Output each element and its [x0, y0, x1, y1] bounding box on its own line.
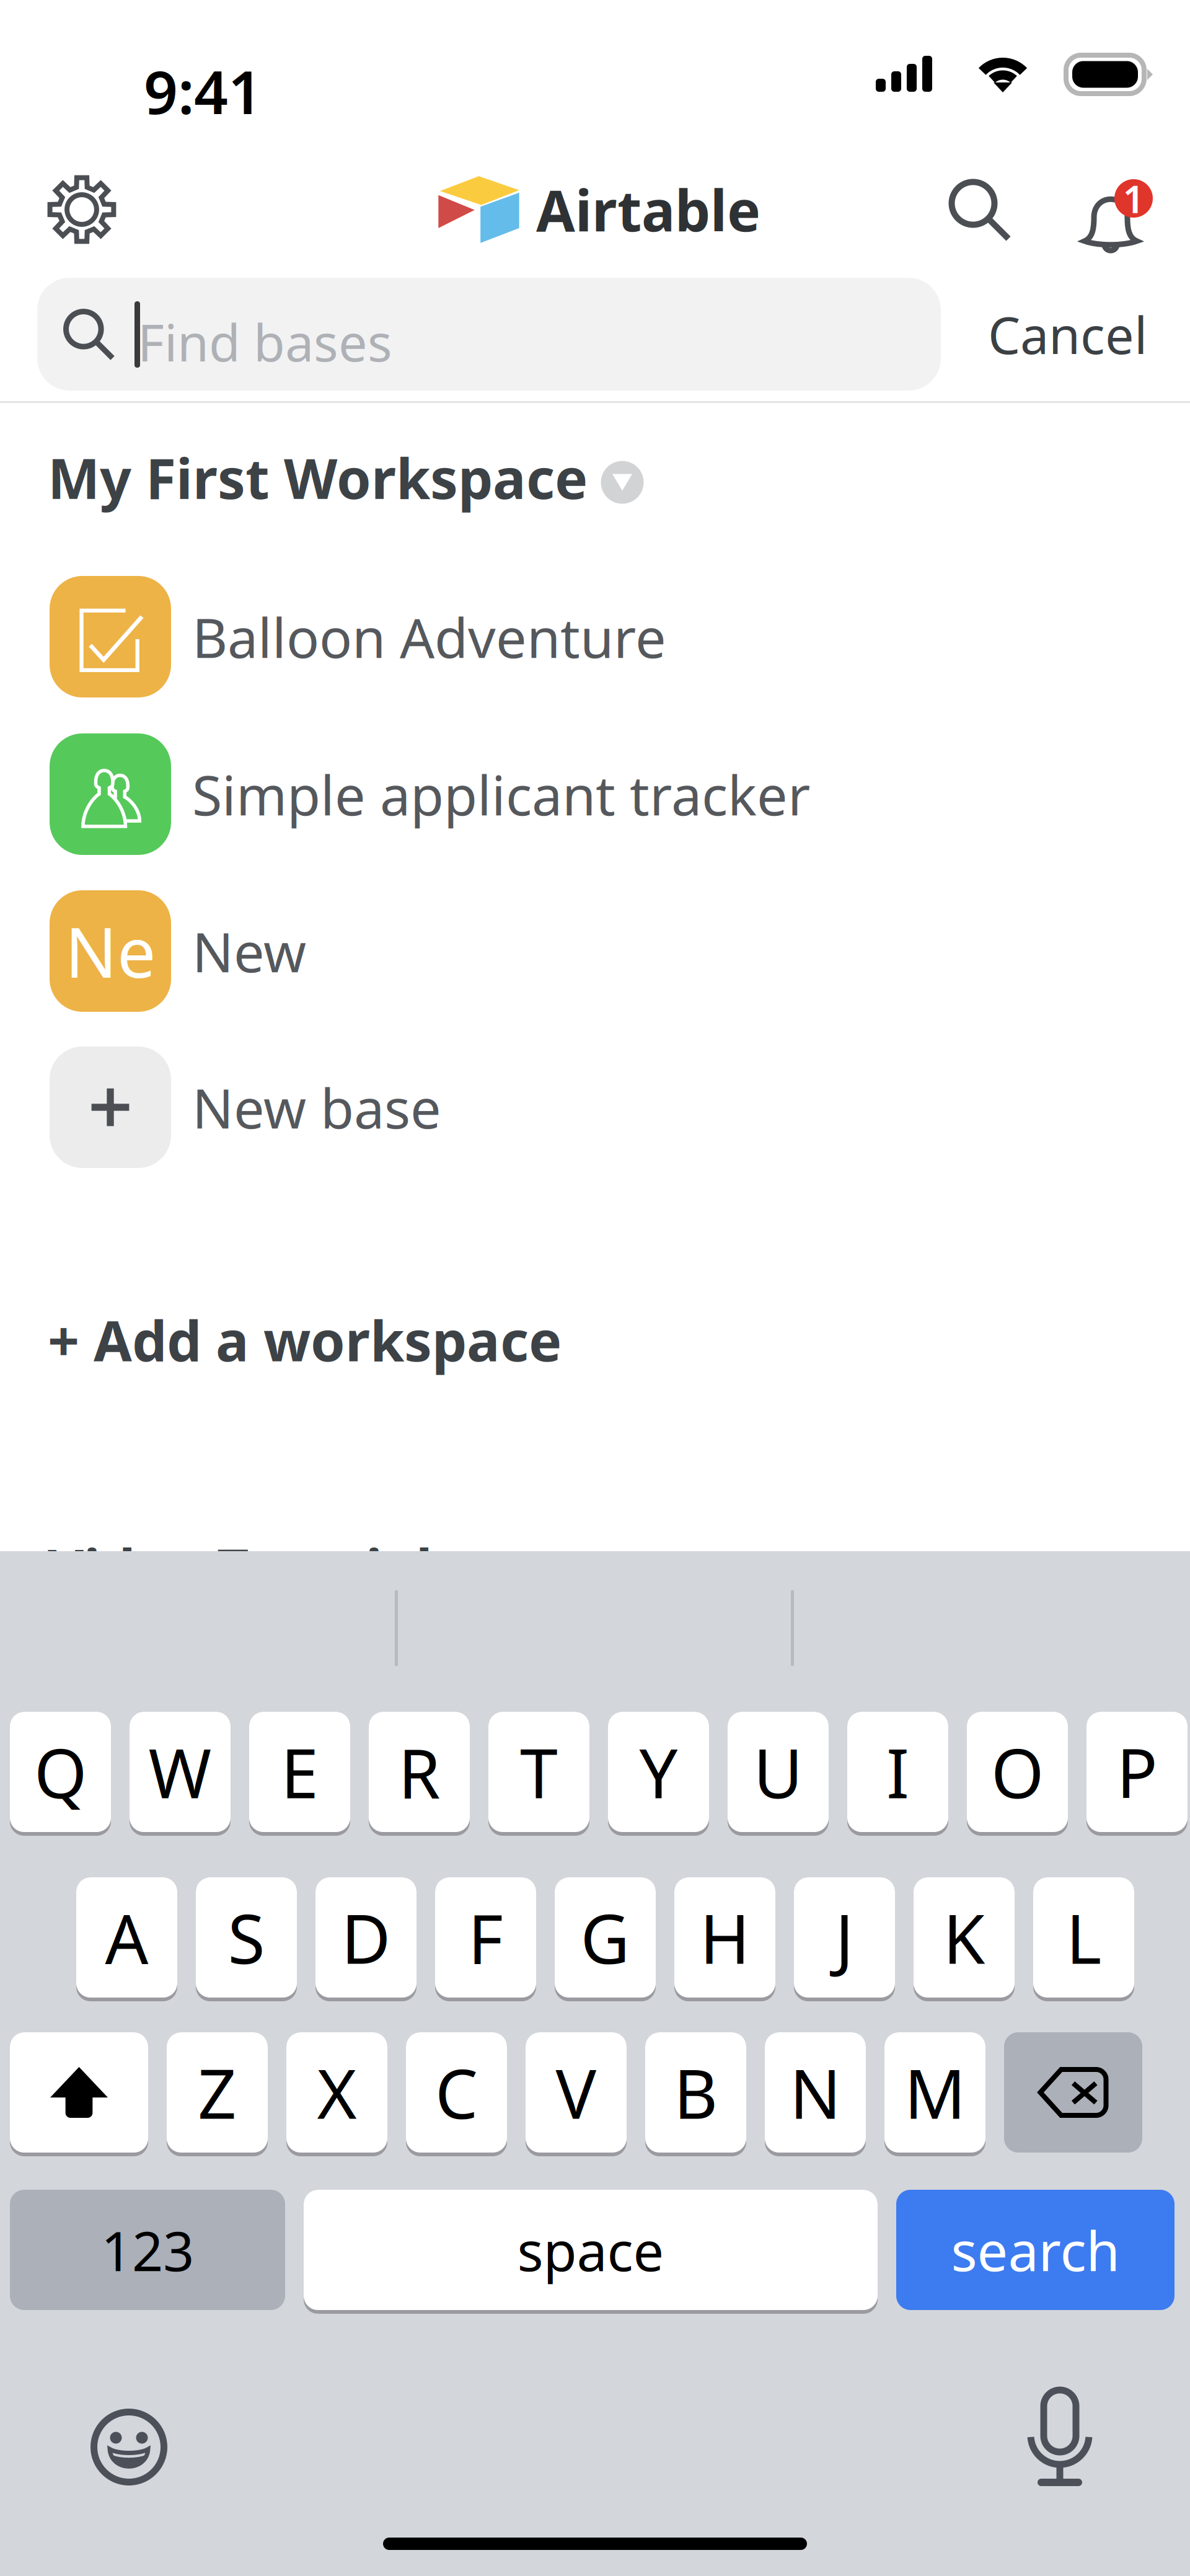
button[interactable]: F	[435, 1877, 536, 1998]
button[interactable]: H	[674, 1877, 775, 1998]
button[interactable]: Numbers	[10, 2190, 285, 2310]
staticText: M	[904, 2047, 966, 2137]
button[interactable]: V	[526, 2032, 627, 2153]
button[interactable]: K	[914, 1877, 1015, 1998]
staticText: O	[991, 1727, 1044, 1817]
button[interactable]: U	[728, 1712, 829, 1832]
staticText: N	[790, 2047, 841, 2137]
staticText: X	[317, 2047, 357, 2137]
staticText: search	[951, 2214, 1120, 2286]
staticText: T	[520, 1727, 558, 1817]
staticText: S	[228, 1892, 265, 1982]
button[interactable]: I	[847, 1712, 948, 1832]
staticText: space	[517, 2214, 664, 2286]
staticText: 123	[101, 2214, 194, 2286]
staticText: E	[281, 1727, 319, 1817]
button[interactable]: E	[249, 1712, 350, 1832]
staticText: New	[192, 915, 306, 987]
staticText: Simple applicant tracker	[192, 758, 810, 830]
button[interactable]: M	[884, 2032, 985, 2153]
button[interactable]: Q	[10, 1712, 111, 1832]
staticText: C	[435, 2047, 478, 2137]
button[interactable]: L	[1033, 1877, 1134, 1998]
button[interactable]: D	[315, 1877, 416, 1998]
staticText: F	[468, 1892, 503, 1982]
staticText: Video Tutorials	[48, 1531, 461, 1605]
button[interactable]: Simple applicant tracker	[0, 733, 1190, 855]
button[interactable]: Ne	[0, 890, 1190, 1012]
staticText: New base	[192, 1071, 441, 1144]
button[interactable]: J	[794, 1877, 895, 1998]
staticText: W	[148, 1727, 212, 1817]
staticText: K	[943, 1892, 985, 1982]
staticText: Ne	[65, 905, 156, 997]
staticText: R	[398, 1727, 440, 1817]
staticText: 9:41	[144, 51, 262, 131]
staticText: L	[1066, 1892, 1101, 1982]
button[interactable]: Workspace options	[596, 456, 648, 508]
staticText: V	[556, 2047, 597, 2137]
staticText: H	[700, 1892, 750, 1982]
button[interactable]: N	[765, 2032, 866, 2153]
staticText: Q	[34, 1727, 87, 1817]
button[interactable]: R	[369, 1712, 470, 1832]
button[interactable]: Settings	[35, 166, 128, 253]
button[interactable]: Delete	[1004, 2032, 1142, 2153]
staticText: J	[835, 1892, 854, 1982]
button[interactable]: Shift	[10, 2032, 148, 2153]
staticText: Z	[198, 2047, 237, 2137]
button[interactable]: Y	[608, 1712, 709, 1832]
staticText: B	[674, 2047, 718, 2137]
staticText: Cancel	[988, 300, 1147, 368]
staticText: G	[580, 1892, 630, 1982]
button[interactable]: Emoji keyboard	[67, 2388, 191, 2506]
button[interactable]: Search	[936, 166, 1023, 253]
staticText: D	[341, 1892, 391, 1982]
button[interactable]: Z	[167, 2032, 268, 2153]
button[interactable]: + Add a workspace	[0, 1299, 1190, 1380]
button[interactable]: Dictation	[998, 2376, 1122, 2494]
button[interactable]: search	[896, 2190, 1175, 2310]
staticText: Y	[639, 1727, 678, 1817]
staticText: 1	[1123, 173, 1144, 224]
staticText: Airtable	[536, 172, 760, 247]
button[interactable]: Cancel	[988, 278, 1186, 391]
button[interactable]: C	[406, 2032, 507, 2153]
staticText: Find bases	[138, 308, 392, 376]
staticText: A	[105, 1892, 148, 1982]
staticText: My First Workspace	[48, 441, 588, 514]
button[interactable]: P	[1086, 1712, 1188, 1832]
button[interactable]: Notifications	[1057, 166, 1144, 253]
button[interactable]: S	[196, 1877, 297, 1998]
staticText: U	[753, 1727, 803, 1817]
button[interactable]: Balloon Adventure	[0, 576, 1190, 697]
button[interactable]: W	[130, 1712, 231, 1832]
button[interactable]: X	[286, 2032, 387, 2153]
button[interactable]: space	[304, 2190, 878, 2310]
staticText: Balloon Adventure	[192, 601, 666, 673]
staticText: I	[886, 1727, 909, 1817]
button[interactable]: G	[555, 1877, 656, 1998]
button[interactable]: B	[645, 2032, 746, 2153]
button[interactable]: O	[967, 1712, 1068, 1832]
staticText: P	[1117, 1727, 1157, 1817]
button[interactable]: T	[488, 1712, 589, 1832]
staticText: + Add a workspace	[48, 1303, 562, 1377]
button[interactable]: New base	[0, 1047, 1190, 1168]
button[interactable]: A	[76, 1877, 177, 1998]
